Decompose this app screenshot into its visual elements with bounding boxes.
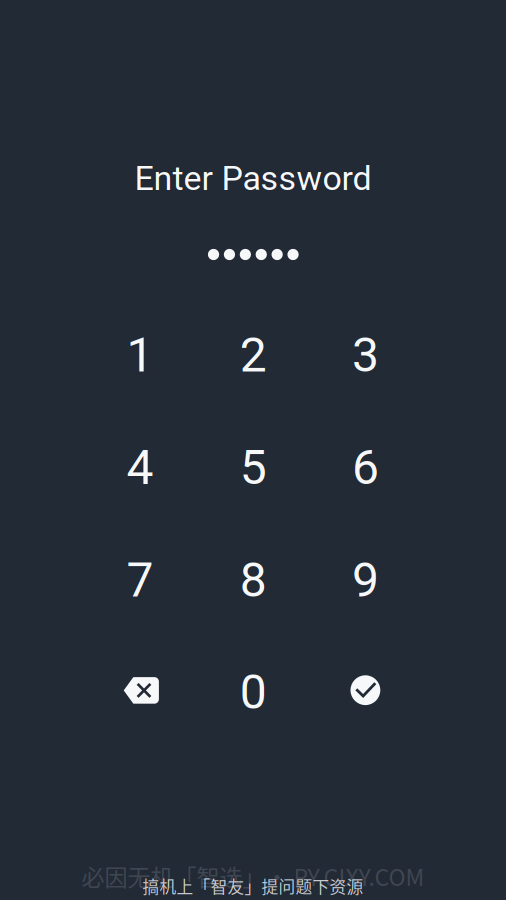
staticText: 5	[240, 439, 267, 496]
button[interactable]: 0	[201, 642, 305, 742]
button[interactable]: Confirm passcode	[313, 640, 417, 740]
staticText: Enter Password	[134, 159, 371, 198]
button[interactable]: 3	[313, 305, 417, 405]
button[interactable]: 4	[88, 417, 192, 517]
button[interactable]: Delete	[89, 640, 193, 740]
staticText: 必因无机「智选」· PY.CIXY.COM	[81, 859, 424, 893]
staticText: 2	[240, 327, 267, 383]
staticText: 3	[352, 327, 379, 383]
button[interactable]: 2	[201, 305, 305, 405]
staticText: 1	[126, 327, 153, 383]
button[interactable]: 7	[88, 530, 192, 630]
button[interactable]: 6	[313, 417, 417, 517]
staticText: 8	[240, 552, 267, 608]
staticText: 搞机上「智友」提问题下资源	[142, 874, 363, 898]
button[interactable]: 5	[201, 417, 305, 517]
button[interactable]: 8	[201, 530, 305, 630]
staticText: 6	[352, 439, 379, 496]
button[interactable]: 1	[88, 305, 192, 405]
staticText: 0	[240, 664, 267, 720]
staticText: 7	[126, 552, 153, 608]
staticText: 4	[126, 439, 153, 496]
staticText: 9	[352, 552, 379, 608]
button[interactable]: 9	[313, 530, 417, 630]
